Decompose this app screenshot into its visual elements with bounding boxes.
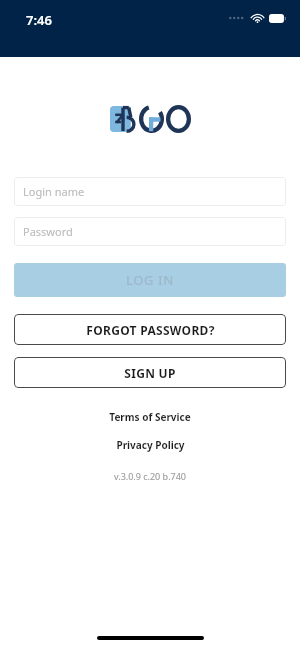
button[interactable]: Password — [14, 217, 286, 246]
button[interactable]: FORGOT PASSWORD? — [14, 314, 286, 345]
button[interactable]: Privacy Policy — [108, 436, 193, 454]
staticText: Terms of Service — [109, 410, 191, 424]
button[interactable]: SIGN UP — [14, 357, 286, 388]
staticText: Password — [23, 224, 73, 239]
button[interactable]: Login name — [14, 177, 286, 206]
staticText: v.3.0.9 c.20 b.740 — [114, 470, 186, 482]
button[interactable]: Terms of Service — [101, 408, 199, 426]
staticText: Privacy Policy — [116, 438, 185, 452]
staticText: FORGOT PASSWORD? — [86, 322, 215, 338]
staticText: LOG IN — [126, 271, 174, 289]
staticText: SIGN UP — [124, 365, 176, 381]
staticText: 7:46 — [26, 11, 52, 29]
staticText: Login name — [23, 184, 85, 199]
